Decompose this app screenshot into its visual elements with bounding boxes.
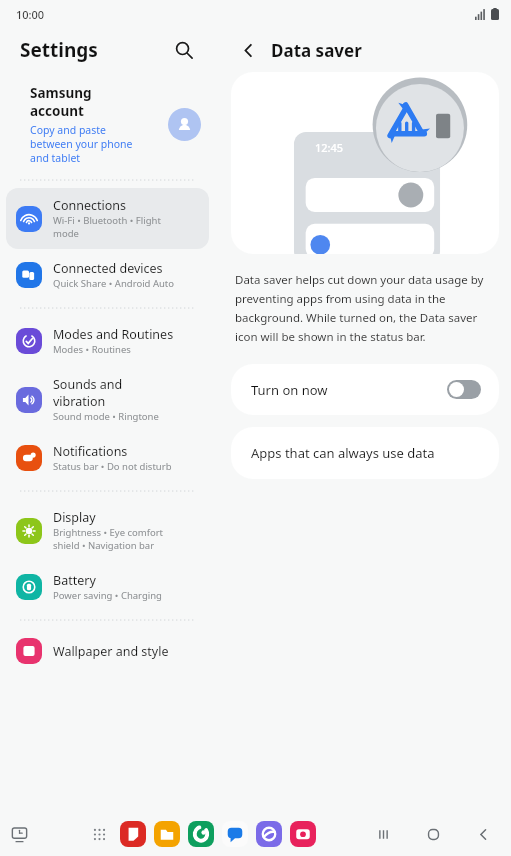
button[interactable]: Sounds and vibration <box>6 367 209 432</box>
button[interactable]: Back <box>233 35 263 65</box>
staticText: Brightness • Eye comfort shield • Naviga… <box>53 526 164 552</box>
staticText: Apps that can always use data <box>251 444 435 462</box>
button[interactable]: Camera <box>290 821 316 847</box>
button[interactable]: Modes and Routines <box>6 317 209 365</box>
button[interactable]: Wallpaper and style <box>6 629 209 673</box>
staticText: Power saving • Charging <box>53 589 162 602</box>
button[interactable]: Turn on now <box>231 364 499 415</box>
staticText: Data saver <box>271 39 362 62</box>
button[interactable]: Display <box>6 500 209 561</box>
button[interactable]: Notifications <box>6 434 209 482</box>
button[interactable]: Connected devices <box>6 251 209 299</box>
staticText: Data saver helps cut down your data usag… <box>235 272 493 344</box>
button[interactable]: Home <box>419 820 447 848</box>
staticText: Wi-Fi • Bluetooth • Flight mode <box>53 214 161 240</box>
staticText: 12:45 <box>315 140 344 155</box>
staticText: Connected devices <box>53 260 163 277</box>
button[interactable]: Phone <box>188 821 214 847</box>
staticText: Connections <box>53 197 126 214</box>
staticText: Wallpaper and style <box>53 643 169 660</box>
staticText: Modes and Routines <box>53 326 174 343</box>
button[interactable]: Notes <box>120 821 146 847</box>
staticText: Notifications <box>53 443 128 460</box>
staticText: Samsung account <box>30 84 92 120</box>
staticText: 10:00 <box>16 7 45 22</box>
staticText: Copy and paste between your phone and ta… <box>30 123 133 165</box>
staticText: Display <box>53 509 96 526</box>
button[interactable]: Apps that can always use data <box>231 427 499 479</box>
button[interactable]: Files <box>154 821 180 847</box>
button[interactable]: Samsung account <box>0 72 215 171</box>
button[interactable]: Taskbar <box>4 819 34 849</box>
staticText: Sound mode • Ringtone <box>53 410 159 423</box>
button[interactable]: Apps <box>86 821 112 847</box>
button[interactable]: Back <box>469 820 497 848</box>
button[interactable]: Battery <box>6 563 209 611</box>
staticText: Settings <box>20 37 98 63</box>
staticText: Battery <box>53 572 96 589</box>
staticText: Turn on now <box>251 381 447 399</box>
staticText: Status bar • Do not disturb <box>53 460 172 473</box>
button[interactable]: Search <box>167 33 201 67</box>
button[interactable]: Recents <box>369 820 397 848</box>
button[interactable]: Internet <box>256 821 282 847</box>
staticText: Quick Share • Android Auto <box>53 277 175 290</box>
staticText: Sounds and vibration <box>53 376 123 410</box>
staticText: Modes • Routines <box>53 343 131 356</box>
button[interactable]: Connections <box>6 188 209 249</box>
button[interactable]: Messages <box>222 821 248 847</box>
